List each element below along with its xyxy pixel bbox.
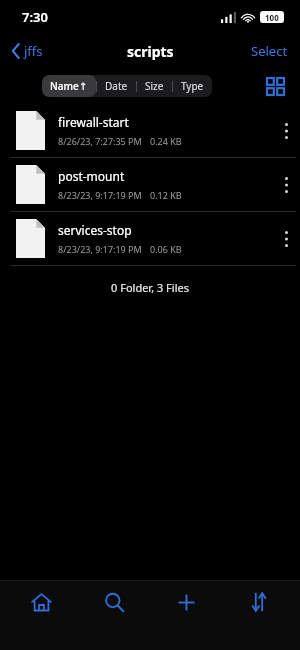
staticText: Type xyxy=(181,79,204,93)
staticText: services-stop xyxy=(58,222,132,238)
staticText: 0.24 KB xyxy=(150,135,182,147)
button[interactable]: Size xyxy=(137,75,172,97)
button[interactable]: More options xyxy=(273,167,300,203)
staticText: Date xyxy=(105,79,128,93)
staticText: 7:30 xyxy=(22,8,48,26)
button[interactable]: jffs xyxy=(0,38,53,64)
staticText: 0.06 KB xyxy=(150,243,182,255)
staticText: 8/23/23, 9:17:19 PM xyxy=(58,243,142,255)
button[interactable]: Add xyxy=(154,581,218,627)
button[interactable]: services-stop xyxy=(0,212,300,265)
staticText: jffs xyxy=(24,42,43,60)
staticText: firewall-start xyxy=(58,114,129,130)
staticText: 0 Folder, 3 Files xyxy=(0,280,300,295)
button[interactable]: Name↑ xyxy=(42,75,96,97)
button[interactable]: Search xyxy=(82,581,146,627)
button[interactable]: More options xyxy=(273,221,300,257)
button[interactable]: Select xyxy=(239,36,300,66)
staticText: 0.12 KB xyxy=(150,189,182,201)
button[interactable]: post-mount xyxy=(0,158,300,211)
button[interactable]: Date xyxy=(97,75,136,97)
button[interactable]: Grid view xyxy=(261,72,290,101)
button[interactable]: Home xyxy=(9,581,73,627)
button[interactable]: More options xyxy=(273,113,300,149)
button[interactable]: firewall-start xyxy=(0,104,300,157)
staticText: Size xyxy=(145,79,164,93)
staticText: scripts xyxy=(127,42,174,61)
staticText: Name↑ xyxy=(50,79,88,93)
button[interactable]: Type xyxy=(173,75,212,97)
staticText: 8/26/23, 7:27:35 PM xyxy=(58,135,142,147)
button[interactable]: Sort xyxy=(227,581,291,627)
staticText: 100 xyxy=(265,12,279,23)
staticText: post-mount xyxy=(58,168,125,184)
staticText: 8/23/23, 9:17:19 PM xyxy=(58,189,142,201)
